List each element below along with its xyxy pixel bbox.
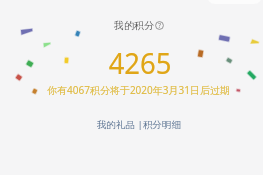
staticText: | (135, 118, 143, 131)
button[interactable]: 我的礼品 (97, 119, 135, 131)
staticText: 你有4067积分将于2020年3月31日后过期 (47, 83, 230, 97)
staticText: 我的积分 (114, 19, 154, 32)
staticText: 4265 (109, 42, 172, 82)
button[interactable]: 积分明细 (143, 119, 181, 131)
other: Help (155, 21, 164, 30)
button[interactable]: 我的积分 (114, 19, 164, 32)
staticText: ? (158, 21, 162, 30)
